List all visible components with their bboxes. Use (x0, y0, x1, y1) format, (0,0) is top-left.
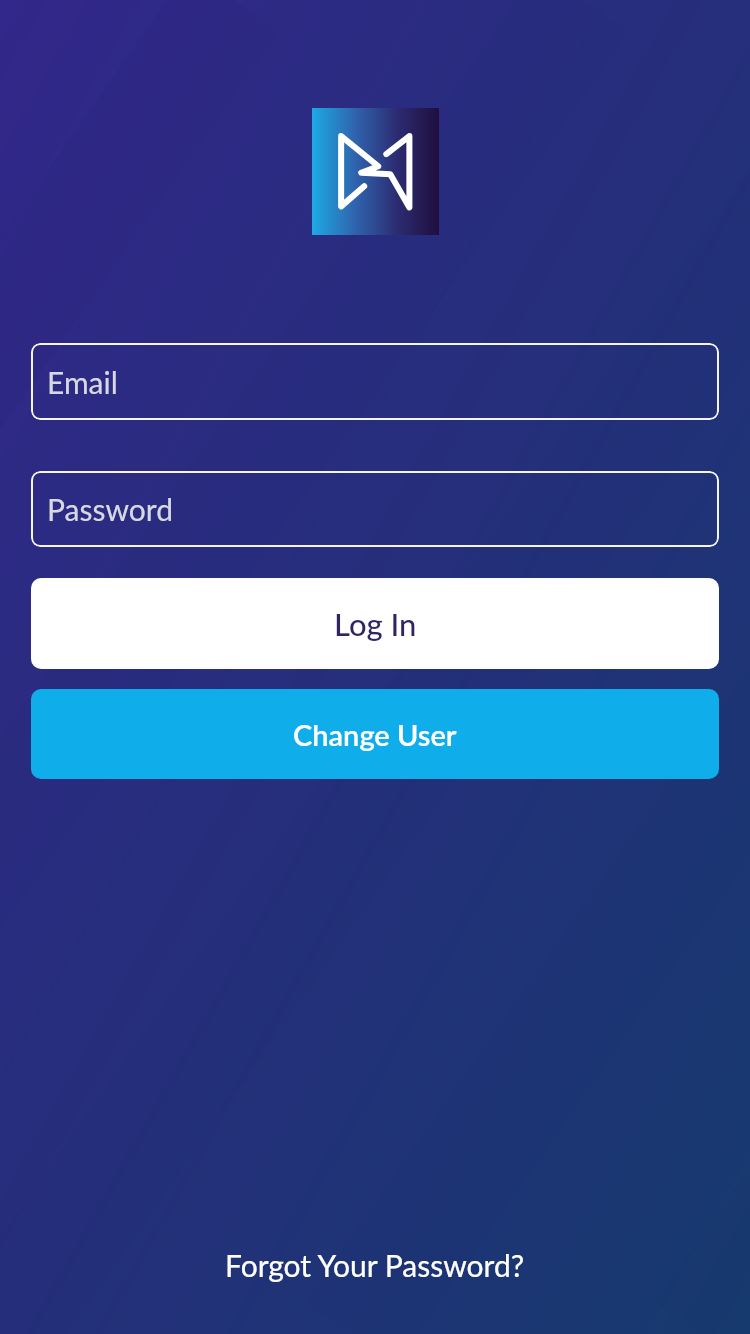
staticText: Password (47, 491, 173, 527)
button[interactable]: Log In (31, 578, 719, 669)
button[interactable]: Change User (31, 689, 719, 779)
button[interactable]: Email (31, 343, 719, 420)
button[interactable]: Password (31, 471, 719, 547)
staticText: Email (47, 364, 118, 400)
staticText: Log In (334, 605, 417, 642)
staticText: Change User (293, 717, 457, 752)
button[interactable]: Forgot Your Password? (225, 1247, 525, 1283)
